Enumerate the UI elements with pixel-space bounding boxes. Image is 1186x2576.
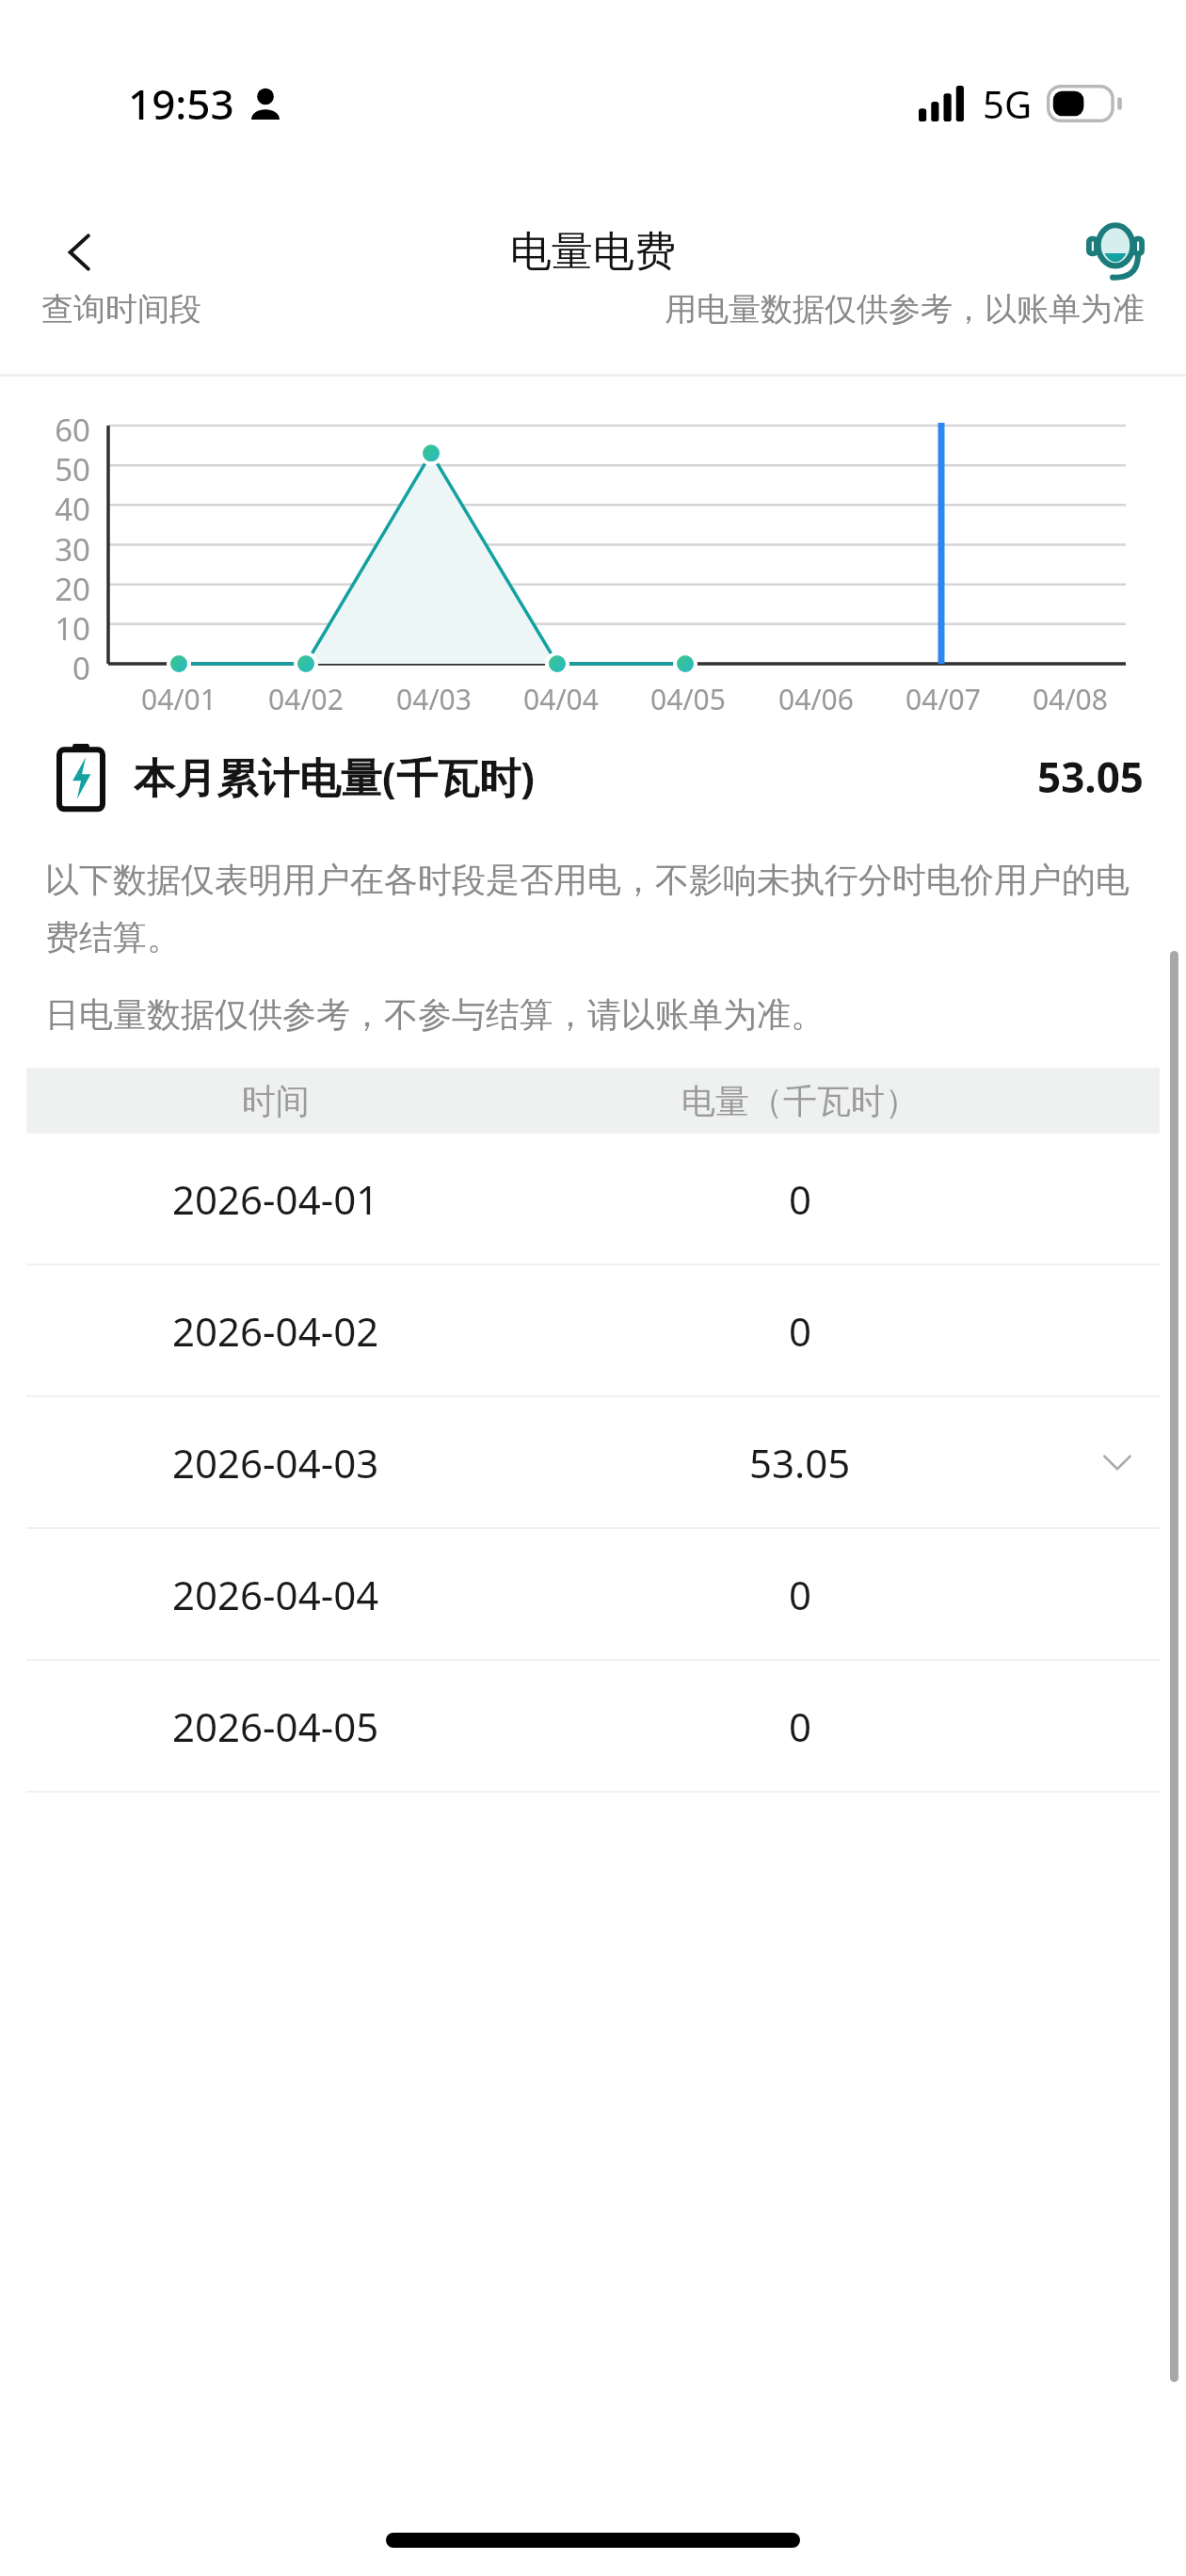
staticText: 53.05 (749, 1436, 851, 1489)
staticText: 10 (32, 607, 90, 650)
staticText: 0 (789, 1699, 812, 1753)
staticText: 04/01 (120, 680, 237, 718)
staticText: 查询时间段 (41, 289, 201, 330)
staticText: 电量电费 (510, 226, 676, 278)
staticText: 2026-04-03 (172, 1436, 379, 1489)
staticText: 本月累计电量(千瓦时) (134, 749, 535, 805)
staticText: 04/04 (503, 680, 619, 718)
staticText: 以下数据仅表明用户在各时段是否用电，不影响未执行分时电价用户的电费结算。 (45, 859, 1145, 959)
staticText: 04/07 (885, 680, 1002, 718)
staticText: 0 (789, 1304, 812, 1358)
button[interactable]: 2026-04-01 (26, 1134, 1160, 1264)
staticText: 5G (983, 78, 1032, 129)
staticText: 20 (32, 568, 90, 610)
staticText: 2026-04-05 (172, 1699, 379, 1753)
staticText: 04/08 (1012, 680, 1129, 718)
staticText: 04/06 (758, 680, 874, 718)
button[interactable]: 2026-04-02 (26, 1265, 1160, 1395)
button[interactable]: 2026-04-05 (26, 1661, 1160, 1791)
staticText: 日电量数据仅供参考，不参与结算，请以账单为准。 (45, 993, 825, 1036)
staticText: 53.05 (1037, 749, 1145, 805)
staticText: 60 (32, 409, 90, 451)
button[interactable]: 2026-04-04 (26, 1529, 1160, 1659)
staticText: 19:53 (128, 75, 234, 132)
staticText: 40 (32, 488, 90, 530)
staticText: 0 (789, 1172, 812, 1226)
button[interactable]: Back (28, 201, 132, 304)
staticText: 50 (32, 448, 90, 491)
staticText: 30 (32, 528, 90, 571)
staticText: 0 (32, 647, 90, 689)
staticText: 2026-04-04 (172, 1568, 379, 1621)
staticText: 电量（千瓦时） (681, 1080, 919, 1122)
button[interactable]: 2026-04-03 (26, 1397, 1160, 1527)
button[interactable]: Customer service (1064, 201, 1167, 304)
staticText: 2026-04-02 (172, 1304, 379, 1358)
staticText: 04/02 (248, 680, 364, 718)
staticText: 04/03 (376, 680, 492, 718)
staticText: 0 (789, 1568, 812, 1621)
staticText: 2026-04-01 (172, 1172, 379, 1226)
button[interactable]: 本月累计电量(千瓦时) (0, 716, 1186, 838)
staticText: 04/05 (630, 680, 746, 718)
staticText: 时间 (242, 1080, 310, 1122)
staticText: 用电量数据仅供参考，以账单为准 (665, 289, 1145, 330)
